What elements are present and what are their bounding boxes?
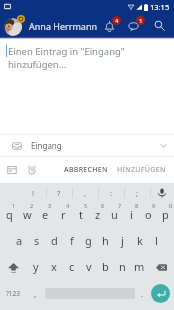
button[interactable]: h	[97, 228, 114, 254]
button[interactable]: ;	[124, 183, 150, 202]
staticText: Einen Eintrag in "Eingang" hinzufügen...	[8, 45, 125, 71]
staticText: 9	[152, 202, 156, 209]
staticText: .	[141, 288, 144, 299]
button[interactable]: m	[131, 254, 148, 280]
button[interactable]: g	[80, 228, 97, 254]
button[interactable]: :	[98, 183, 124, 202]
staticText: u	[111, 207, 118, 222]
button[interactable]: Set date	[5, 163, 19, 177]
staticText: !	[32, 188, 35, 198]
staticText: HINZUFÜGEN	[117, 165, 166, 175]
staticText: ;	[136, 188, 139, 198]
staticText: 1	[12, 202, 16, 209]
button[interactable]: Enter	[151, 284, 170, 303]
button[interactable]: l	[148, 228, 165, 254]
button[interactable]: Eingang	[0, 135, 174, 156]
staticText: k	[137, 233, 143, 248]
staticText: x	[51, 259, 57, 274]
staticText: b	[102, 259, 109, 274]
staticText: m	[134, 259, 145, 274]
staticText: ,	[84, 188, 87, 198]
staticText: 6	[101, 202, 105, 209]
staticText: v	[86, 259, 92, 274]
staticText: ABBRECHEN	[64, 165, 108, 175]
button[interactable]: Profile	[3, 14, 26, 37]
staticText: s	[34, 233, 40, 248]
staticText: 4	[115, 17, 119, 25]
staticText: 0	[169, 202, 173, 209]
button[interactable]: f	[63, 228, 80, 254]
staticText: j	[121, 233, 124, 248]
button[interactable]: w	[18, 202, 36, 228]
staticText: n	[119, 259, 126, 274]
staticText: r	[61, 207, 66, 222]
staticText: w	[23, 207, 32, 222]
staticText: Eingang	[31, 140, 62, 151]
staticText: p	[162, 207, 169, 222]
staticText: 5	[84, 202, 88, 209]
button[interactable]: HINZUFÜGEN	[114, 161, 169, 179]
button[interactable]: a	[10, 228, 28, 254]
staticText: 3	[48, 202, 52, 209]
button[interactable]: !	[20, 183, 46, 202]
button[interactable]: r	[54, 202, 72, 228]
staticText: 1	[139, 17, 143, 25]
staticText: 13:15	[150, 2, 170, 12]
staticText: z	[95, 207, 101, 222]
button[interactable]: Notifications	[103, 15, 122, 36]
button[interactable]: Set reminder	[25, 163, 39, 177]
staticText: g	[85, 233, 92, 248]
button[interactable]: p	[157, 202, 174, 228]
staticText: y	[33, 259, 39, 274]
staticText: 4	[66, 202, 70, 209]
button[interactable]: Search	[150, 16, 169, 35]
staticText: q	[6, 207, 13, 222]
button[interactable]: u	[106, 202, 123, 228]
staticText: 8	[135, 202, 139, 209]
staticText: f	[70, 233, 74, 248]
button[interactable]: e	[36, 202, 54, 228]
staticText: :	[110, 188, 113, 198]
button[interactable]: s	[28, 228, 46, 254]
staticText: ?123	[6, 289, 20, 298]
button[interactable]: z	[89, 202, 106, 228]
button[interactable]: ,	[72, 183, 98, 202]
button[interactable]: v	[80, 254, 97, 280]
staticText: i	[130, 207, 133, 222]
button[interactable]: Voice input	[150, 183, 174, 202]
button[interactable]: Shift	[0, 254, 27, 280]
staticText: l	[155, 233, 158, 248]
staticText: ,	[34, 288, 37, 299]
button[interactable]: y	[27, 254, 45, 280]
button[interactable]: k	[131, 228, 148, 254]
button[interactable]: Messages	[127, 15, 146, 36]
button[interactable]: b	[97, 254, 114, 280]
staticText: 2	[30, 202, 34, 209]
staticText: o	[145, 207, 152, 222]
button[interactable]: o	[140, 202, 157, 228]
button[interactable]: q	[0, 202, 18, 228]
staticText: a	[16, 233, 23, 248]
staticText: ?	[57, 188, 61, 198]
button[interactable]: i	[123, 202, 140, 228]
button[interactable]: ,	[26, 280, 45, 306]
button[interactable]: j	[114, 228, 131, 254]
button[interactable]: Backspace	[148, 254, 174, 280]
staticText: e	[42, 207, 49, 222]
button[interactable]: .	[135, 280, 149, 306]
button[interactable]: ABBRECHEN	[61, 161, 111, 179]
staticText: h	[102, 233, 109, 248]
button[interactable]: ?123	[0, 280, 26, 306]
button[interactable]: t	[72, 202, 89, 228]
button[interactable]: d	[46, 228, 63, 254]
staticText: 7	[118, 202, 122, 209]
button[interactable]: ?	[46, 183, 72, 202]
staticText: Anna Herrmann	[29, 20, 98, 32]
staticText: d	[51, 233, 58, 248]
button[interactable]: x	[45, 254, 63, 280]
staticText: c	[69, 259, 75, 274]
button[interactable]: n	[114, 254, 131, 280]
button[interactable]: c	[63, 254, 80, 280]
staticText: t	[79, 207, 83, 222]
